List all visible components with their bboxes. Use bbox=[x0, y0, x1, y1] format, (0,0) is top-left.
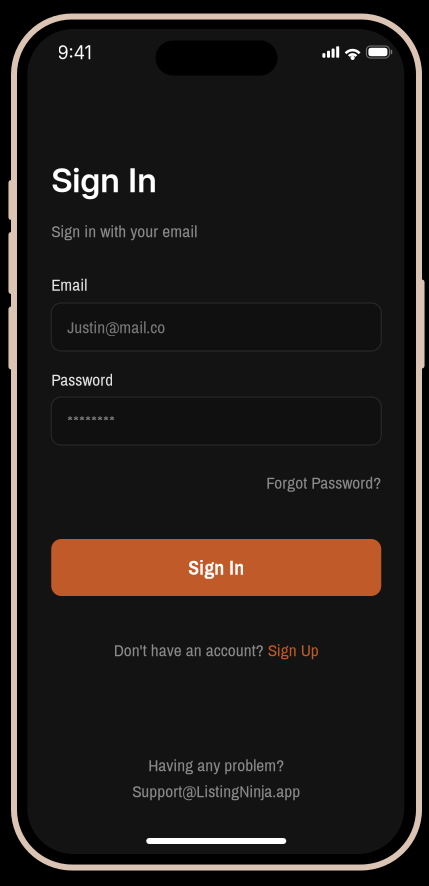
staticText: Justin@mail.co bbox=[67, 315, 165, 339]
staticText: Sign in with your email bbox=[51, 219, 197, 243]
staticText: Support@ListingNinja.app bbox=[132, 779, 300, 803]
button[interactable]: Sign In bbox=[51, 539, 381, 596]
staticText: Forgot Password? bbox=[266, 471, 381, 494]
button[interactable]: Justin@mail.co bbox=[51, 303, 381, 351]
staticText: Having any problem? bbox=[148, 753, 284, 777]
staticText: Password bbox=[51, 368, 113, 391]
staticText: Sign Up bbox=[268, 638, 319, 662]
staticText: Don't have an account? bbox=[114, 638, 264, 662]
staticText: Sign In bbox=[188, 554, 244, 581]
button[interactable]: Support@ListingNinja.app bbox=[132, 781, 300, 801]
button[interactable]: Don't have an account? bbox=[114, 640, 319, 660]
staticText: Sign In bbox=[51, 160, 157, 200]
staticText: 9:41 bbox=[57, 42, 91, 64]
button[interactable]: ******** bbox=[51, 397, 381, 445]
staticText: Email bbox=[51, 273, 87, 296]
staticText: ******** bbox=[67, 409, 115, 433]
button[interactable]: Forgot Password? bbox=[266, 473, 381, 491]
